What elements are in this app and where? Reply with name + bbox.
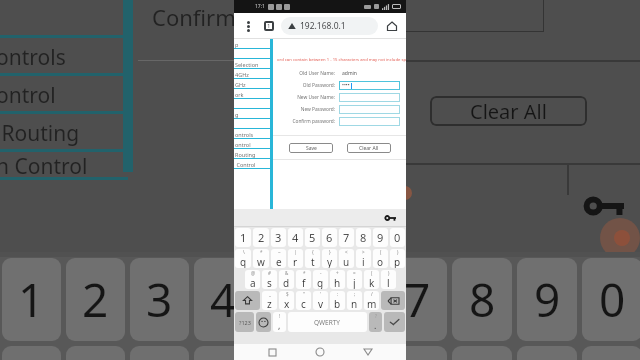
button[interactable]: ontrol (234, 139, 270, 149)
button[interactable]: 5 (305, 228, 320, 247)
button[interactable]: Emoji (256, 312, 271, 332)
button[interactable]: : (330, 291, 345, 310)
button[interactable] (339, 117, 400, 126)
button[interactable]: ? (369, 312, 382, 332)
button[interactable]: 5 (258, 258, 317, 341)
button[interactable]: | (288, 249, 303, 268)
staticText: 5 (274, 268, 301, 331)
button[interactable]: Home (310, 344, 330, 360)
button[interactable]: 3 (130, 258, 189, 341)
button[interactable]: ) (390, 249, 405, 268)
button[interactable]: # (262, 270, 277, 289)
staticText: : (337, 291, 339, 297)
staticText: | (294, 249, 297, 255)
button[interactable]: > (356, 249, 371, 268)
button[interactable]: GHz (234, 79, 270, 89)
button[interactable]: ( (364, 270, 379, 289)
button[interactable]: 4 (288, 228, 303, 247)
button[interactable]: 6 (322, 228, 337, 247)
button[interactable]: 1 (2, 258, 61, 341)
button[interactable]: Clear All (347, 143, 391, 153)
button[interactable]: { (305, 249, 320, 268)
button[interactable]: 7 (339, 228, 354, 247)
button[interactable]: * (253, 249, 269, 268)
staticText: p (394, 255, 401, 268)
button[interactable]: ~ (271, 249, 286, 268)
button[interactable]: ?123 (235, 312, 254, 332)
button[interactable]: ; (347, 291, 362, 310)
staticText: 9 (534, 268, 561, 331)
button[interactable]: @ (245, 270, 260, 289)
button[interactable]: Clear All (430, 96, 587, 126)
button[interactable]: admin (339, 69, 400, 78)
button[interactable]: _ (262, 291, 277, 310)
button[interactable]: Back (358, 344, 378, 360)
button[interactable]: 2 (253, 228, 269, 247)
button[interactable]: - (313, 270, 328, 289)
button[interactable]: g (234, 109, 270, 119)
button[interactable]: Backspace (381, 291, 405, 310)
button[interactable]: 3 (271, 228, 286, 247)
button[interactable]: p (234, 39, 270, 49)
staticText: Confirm pas (152, 2, 278, 32)
button[interactable]: Control (234, 159, 270, 169)
button[interactable]: Routing (234, 149, 270, 159)
button[interactable] (339, 105, 400, 114)
staticText: t (311, 255, 315, 268)
button[interactable]: " (296, 291, 311, 310)
button[interactable] (339, 93, 400, 102)
button[interactable]: Selection (234, 59, 270, 69)
button[interactable]: ( (373, 249, 388, 268)
button[interactable]: QWERTY (288, 312, 367, 332)
staticText: 4 (210, 268, 237, 331)
button[interactable]: 4 (194, 258, 253, 341)
button[interactable] (234, 119, 270, 129)
button[interactable]: Shift (235, 291, 260, 310)
button[interactable]: ) (381, 270, 396, 289)
button[interactable]: * (296, 270, 311, 289)
button[interactable]: More options (240, 18, 256, 34)
button[interactable]: 8 (452, 258, 512, 341)
button[interactable]: 4GHz (234, 69, 270, 79)
button[interactable]: Password key (382, 210, 398, 226)
button[interactable]: 0 (582, 258, 640, 341)
button[interactable]: = (347, 270, 362, 289)
button[interactable]: 8 (356, 228, 371, 247)
staticText: { (312, 249, 314, 255)
button[interactable]: 7 (387, 258, 447, 341)
staticText: ?123 (239, 319, 251, 326)
button[interactable]: ontrols (234, 129, 270, 139)
staticText: i (362, 255, 365, 268)
button[interactable]: Tabs (262, 19, 276, 33)
staticText: s (267, 276, 272, 289)
staticText: " (303, 291, 305, 297)
button[interactable]: 6 (322, 258, 382, 341)
button[interactable]: Recents (262, 344, 282, 360)
button[interactable]: \ (235, 249, 251, 268)
button[interactable]: Save (289, 143, 333, 153)
button[interactable]: 192.168.0.1 (281, 17, 378, 35)
button[interactable]: 9 (373, 228, 388, 247)
button[interactable]: 0 (390, 228, 405, 247)
staticText: QWERTY (314, 318, 341, 327)
button[interactable]: & (279, 270, 294, 289)
staticText: ( (371, 270, 373, 276)
button[interactable]: + (330, 270, 345, 289)
button[interactable]: Done (384, 312, 405, 332)
button[interactable] (234, 99, 270, 109)
button[interactable]: ' (313, 291, 328, 310)
button[interactable]: 1 (235, 228, 251, 247)
button[interactable]: 2 (66, 258, 125, 341)
button[interactable]: Home (384, 18, 400, 34)
button[interactable]: 9 (517, 258, 577, 341)
button[interactable]: •••• (339, 81, 400, 90)
button[interactable] (234, 49, 270, 59)
button[interactable]: < (339, 249, 354, 268)
button[interactable]: } (322, 249, 337, 268)
button[interactable]: ! (273, 312, 286, 332)
staticText: 7 (404, 268, 431, 331)
button[interactable]: $ (279, 291, 294, 310)
button[interactable]: ork (234, 89, 270, 99)
button[interactable]: / (364, 291, 379, 310)
staticText: w (257, 255, 265, 268)
